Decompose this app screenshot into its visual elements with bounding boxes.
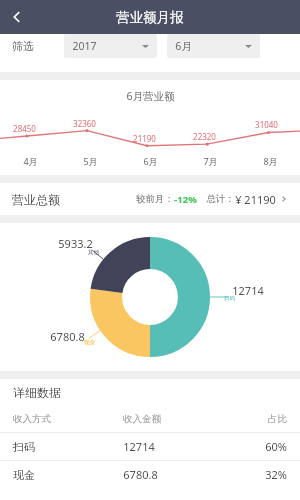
staticText: 6月营业额: [126, 89, 175, 103]
staticText: 较前月：: [136, 193, 174, 205]
staticText: 详细数据: [13, 385, 61, 400]
staticText: 31040: [255, 119, 278, 130]
staticText: 7月: [203, 155, 218, 167]
staticText: 60%: [265, 439, 287, 454]
staticText: 2017: [72, 39, 97, 53]
staticText: 营业总额: [12, 192, 60, 207]
button[interactable]: 营业总额: [0, 183, 300, 215]
staticText: 22320: [193, 131, 216, 142]
staticText: 收入金额: [123, 413, 161, 425]
button[interactable]: Back: [0, 0, 34, 34]
staticText: 4月: [23, 155, 38, 167]
staticText: ¥ 21190: [235, 192, 276, 207]
staticText: 现金: [13, 468, 35, 482]
staticText: 32360: [73, 118, 96, 129]
staticText: 收入方式: [13, 413, 51, 425]
staticText: 扫码: [224, 295, 235, 302]
button[interactable]: 2017: [64, 34, 157, 58]
staticText: 5月: [83, 155, 98, 167]
staticText: 5933.2: [58, 236, 93, 251]
staticText: 12714: [232, 283, 264, 298]
staticText: 6780.8: [123, 467, 158, 482]
staticText: -12%: [174, 193, 197, 206]
staticText: 6780.8: [50, 329, 85, 344]
staticText: 占比: [268, 413, 287, 425]
staticText: 其他: [88, 249, 99, 256]
staticText: 12714: [123, 439, 155, 454]
staticText: 6月: [175, 39, 192, 53]
staticText: 营业额月报: [116, 9, 184, 26]
staticText: 8月: [263, 155, 278, 167]
staticText: 扫码: [13, 440, 35, 454]
staticText: 总计：: [206, 193, 235, 205]
staticText: 28450: [13, 123, 36, 134]
staticText: 6月: [143, 155, 158, 167]
staticText: 32%: [265, 467, 287, 482]
staticText: 现金: [84, 339, 95, 346]
staticText: 21190: [133, 133, 156, 144]
button[interactable]: 6月: [167, 34, 260, 58]
staticText: 筛选: [12, 39, 34, 53]
